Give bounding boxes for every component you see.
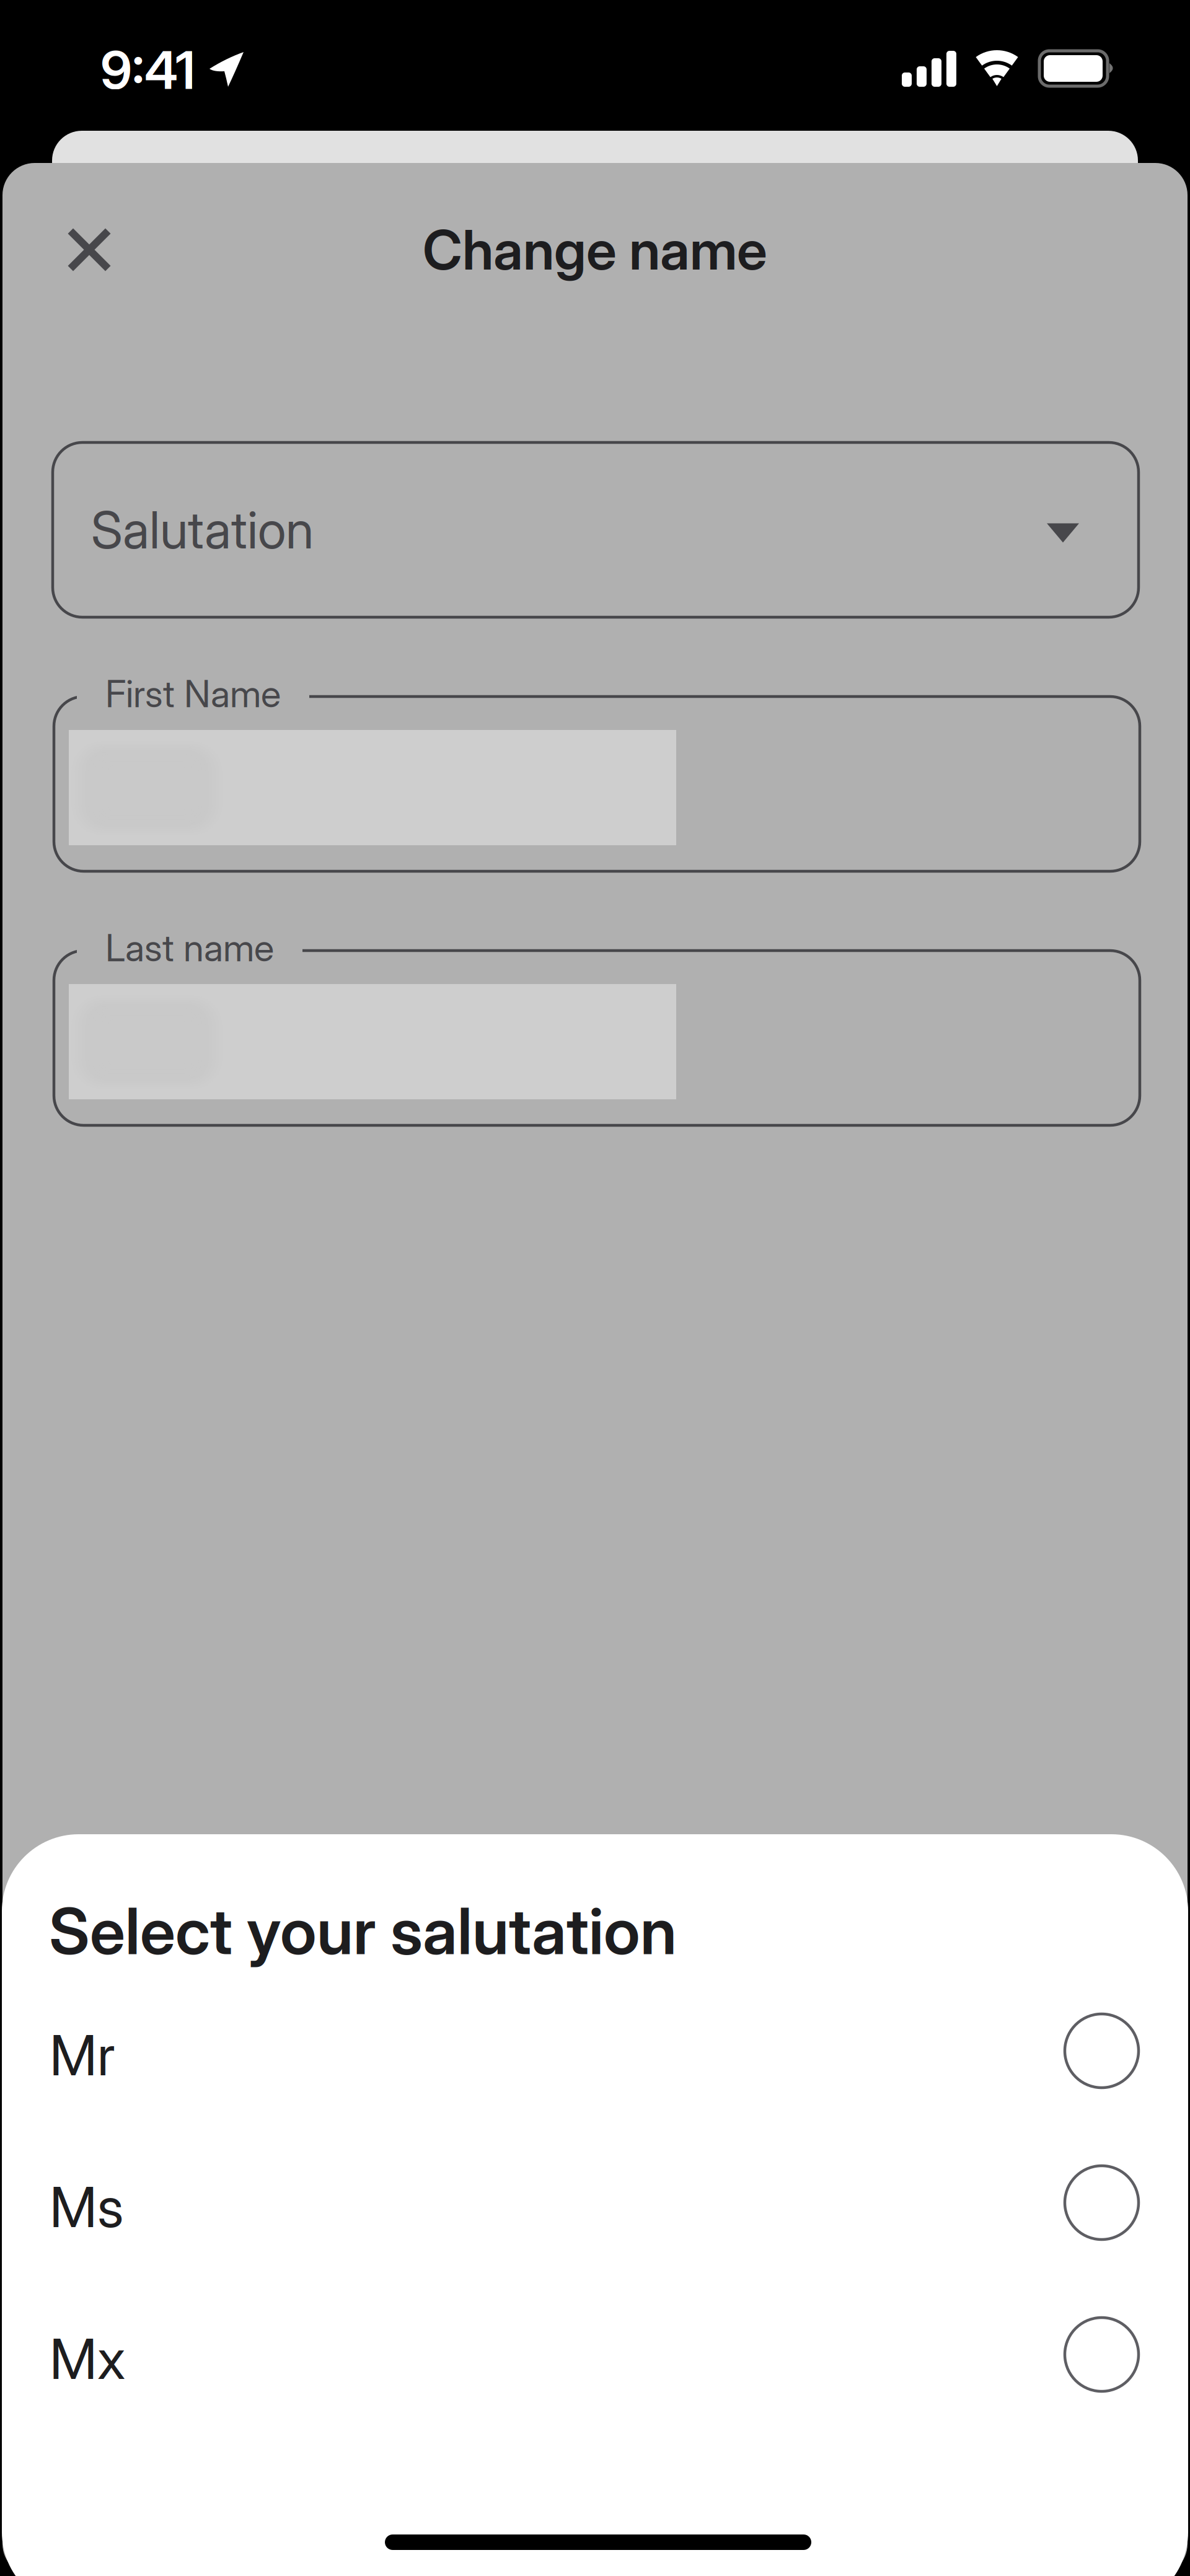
staticText: Change name bbox=[423, 217, 767, 283]
staticText: 9:41 bbox=[100, 38, 195, 101]
button[interactable]: Ms bbox=[2, 2127, 1190, 2279]
staticText: First Name bbox=[105, 671, 281, 716]
staticText: Select your salutation bbox=[49, 1892, 677, 1969]
staticText: Last name bbox=[105, 925, 274, 970]
staticText: Mx bbox=[50, 2325, 125, 2392]
button[interactable]: Mr bbox=[2, 1975, 1190, 2127]
staticText: Salutation bbox=[91, 499, 314, 561]
staticText: Mr bbox=[50, 2022, 115, 2089]
button[interactable]: Mx bbox=[2, 2279, 1190, 2430]
button[interactable]: Salutation bbox=[53, 442, 1139, 617]
staticText: Ms bbox=[50, 2174, 123, 2241]
button[interactable]: Close bbox=[49, 209, 130, 290]
